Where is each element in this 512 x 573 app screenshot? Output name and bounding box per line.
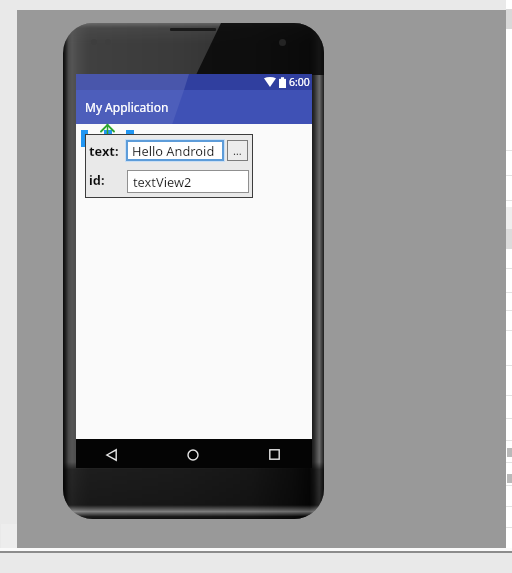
staticText: My Application — [85, 99, 169, 115]
staticText: Hello Android — [132, 142, 215, 159]
staticText: id: — [89, 171, 105, 188]
staticText: text: — [89, 142, 119, 159]
staticText: 6:00 — [289, 75, 310, 89]
button[interactable]: Home — [181, 443, 204, 466]
button[interactable]: Back — [100, 443, 123, 466]
staticText: textView2 — [133, 173, 192, 190]
button[interactable]: More — [227, 140, 248, 161]
staticText: … — [233, 143, 242, 158]
button[interactable]: Recents — [263, 443, 286, 466]
